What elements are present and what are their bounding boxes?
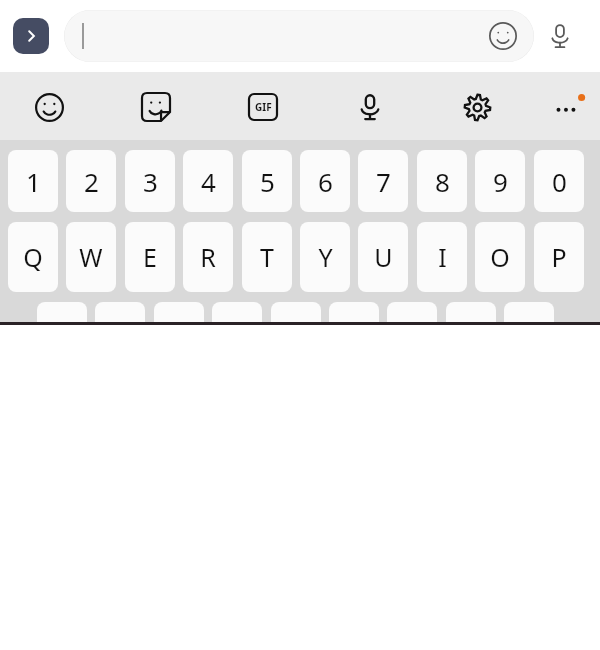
button[interactable]: W bbox=[66, 222, 116, 292]
button[interactable]: Y bbox=[300, 222, 350, 292]
button[interactable]: Voice typing bbox=[352, 89, 388, 125]
staticText: 1 bbox=[26, 164, 41, 199]
button[interactable] bbox=[37, 302, 87, 372]
staticText: 5 bbox=[260, 164, 275, 199]
button[interactable] bbox=[387, 302, 437, 372]
button[interactable]: 3 bbox=[125, 150, 175, 212]
button[interactable] bbox=[212, 302, 262, 372]
button[interactable]: E bbox=[125, 222, 175, 292]
button[interactable]: 2 bbox=[66, 150, 116, 212]
staticText: R bbox=[200, 240, 216, 274]
staticText: P bbox=[551, 240, 567, 274]
staticText: 0 bbox=[552, 164, 567, 199]
button[interactable]: Send bbox=[13, 18, 49, 54]
button[interactable]: O bbox=[475, 222, 525, 292]
button[interactable] bbox=[329, 302, 379, 372]
button[interactable]: Voice input bbox=[542, 18, 578, 54]
button[interactable]: GIF bbox=[245, 89, 281, 125]
staticText: O bbox=[490, 240, 510, 274]
button[interactable] bbox=[271, 302, 321, 372]
button[interactable]: Stickers bbox=[138, 89, 174, 125]
staticText: Y bbox=[318, 240, 333, 274]
staticText: 7 bbox=[376, 164, 391, 199]
button[interactable] bbox=[504, 302, 554, 372]
staticText: GIF bbox=[255, 100, 272, 114]
staticText: 4 bbox=[201, 164, 216, 199]
button[interactable]: U bbox=[358, 222, 408, 292]
button[interactable] bbox=[154, 302, 204, 372]
button[interactable]: Emoji bbox=[486, 19, 520, 53]
button[interactable] bbox=[446, 302, 496, 372]
button[interactable]: I bbox=[417, 222, 467, 292]
staticText: 2 bbox=[84, 164, 99, 199]
button[interactable]: 7 bbox=[358, 150, 408, 212]
button[interactable]: 6 bbox=[300, 150, 350, 212]
button[interactable]: 1 bbox=[8, 150, 58, 212]
staticText: W bbox=[79, 240, 103, 274]
button[interactable]: Emoji bbox=[31, 89, 67, 125]
staticText: I bbox=[438, 240, 447, 274]
button[interactable]: 0 bbox=[534, 150, 584, 212]
button[interactable]: Settings bbox=[459, 89, 495, 125]
staticText: T bbox=[260, 240, 274, 274]
staticText: 3 bbox=[143, 164, 158, 199]
staticText: 6 bbox=[318, 164, 333, 199]
button[interactable]: Q bbox=[8, 222, 58, 292]
staticText: Q bbox=[23, 240, 43, 274]
button[interactable]: T bbox=[242, 222, 292, 292]
staticText: U bbox=[374, 240, 393, 274]
button[interactable]: More options bbox=[550, 89, 586, 125]
button[interactable]: R bbox=[183, 222, 233, 292]
button[interactable]: Emoji bbox=[64, 10, 534, 62]
button[interactable]: P bbox=[534, 222, 584, 292]
staticText: 8 bbox=[435, 164, 450, 199]
button[interactable]: 8 bbox=[417, 150, 467, 212]
button[interactable] bbox=[95, 302, 145, 372]
button[interactable]: 9 bbox=[475, 150, 525, 212]
staticText: 9 bbox=[493, 164, 508, 199]
staticText: E bbox=[143, 240, 157, 274]
button[interactable]: 4 bbox=[183, 150, 233, 212]
button[interactable]: 5 bbox=[242, 150, 292, 212]
